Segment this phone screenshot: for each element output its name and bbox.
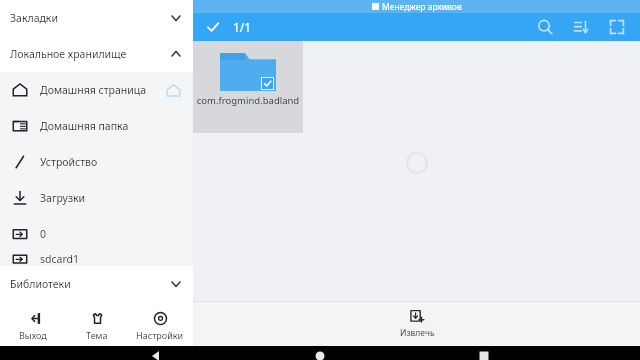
button[interactable]: Домашняя папка [0, 108, 193, 144]
button[interactable]: com.frogmind.badland [193, 41, 303, 133]
staticText: 0 [40, 227, 181, 241]
button[interactable]: Загрузки [0, 180, 193, 216]
button[interactable]: Библиотеки [0, 266, 193, 302]
staticText: Локальное хранилище [10, 47, 169, 61]
button[interactable]: Устройство [0, 144, 193, 180]
staticText: Настройки [136, 329, 184, 341]
staticText: com.frogmind.badland [195, 94, 301, 107]
button[interactable]: Извлечь [372, 306, 462, 342]
button[interactable]: Recents [476, 346, 492, 360]
staticText: sdcard1 [40, 252, 181, 266]
staticText: Домашняя папка [40, 119, 181, 133]
button[interactable]: Sort [570, 16, 592, 38]
staticText: Менеджер архивов [382, 1, 462, 13]
button[interactable]: Select all [201, 15, 225, 39]
button[interactable]: View mode [606, 16, 628, 38]
button[interactable]: Back [148, 346, 164, 360]
button[interactable]: Тема [67, 309, 127, 343]
staticText: Тема [86, 329, 108, 341]
button[interactable]: Локальное хранилище [0, 36, 193, 72]
staticText: Закладки [10, 11, 169, 25]
button[interactable]: Домашняя страница [0, 72, 193, 108]
button[interactable]: Настройки [130, 309, 190, 343]
button[interactable]: Закладки [0, 0, 193, 36]
button[interactable]: sdcard1 [0, 252, 193, 266]
staticText: Библиотеки [10, 277, 169, 291]
staticText: Загрузки [40, 191, 181, 205]
button[interactable]: Home [312, 346, 328, 360]
staticText: Извлечь [400, 327, 435, 339]
staticText: Устройство [40, 155, 181, 169]
button[interactable]: Выход [3, 309, 63, 343]
staticText: Домашняя страница [40, 83, 166, 97]
button[interactable]: Search [534, 16, 556, 38]
staticText: 1/1 [233, 19, 252, 35]
staticText: Выход [19, 329, 47, 341]
button[interactable]: 0 [0, 216, 193, 252]
